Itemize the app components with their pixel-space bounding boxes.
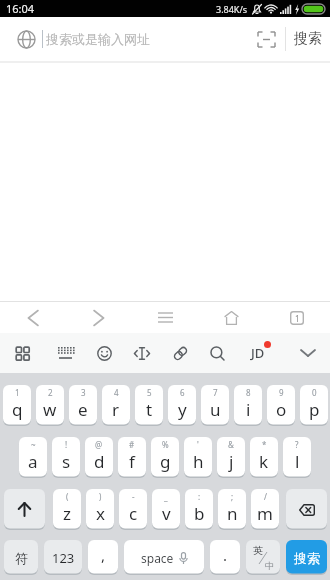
staticText: space [141, 550, 174, 566]
button[interactable]: 搜索或是输入网址 [46, 31, 150, 47]
button[interactable]: space [124, 540, 204, 575]
staticText: 1 [295, 313, 300, 324]
staticText: i [246, 398, 251, 421]
button[interactable]: / [251, 489, 279, 530]
staticText: ; [231, 491, 234, 502]
button[interactable] [290, 333, 326, 373]
staticText: ? [295, 439, 299, 450]
button[interactable]: 1 [264, 302, 330, 333]
button[interactable]: 搜索 [286, 540, 327, 575]
staticText: q [12, 398, 23, 421]
button[interactable]: 符 [4, 540, 38, 575]
button[interactable]: _ [152, 489, 180, 530]
staticText: 3 [81, 387, 86, 398]
button[interactable] [198, 302, 264, 333]
staticText: ' [197, 439, 199, 450]
staticText: , [101, 545, 106, 565]
staticText: l [295, 450, 300, 473]
staticText: k [259, 450, 269, 473]
button[interactable] [286, 489, 327, 530]
button[interactable]: @ [85, 437, 113, 478]
button[interactable]: 0 [300, 385, 328, 426]
staticText: 3.84K/s [216, 3, 248, 15]
button[interactable]: 英 [246, 540, 280, 575]
staticText: 1 [15, 387, 20, 398]
staticText: 16:04 [6, 1, 35, 16]
staticText: g [160, 450, 171, 473]
button[interactable]: ) [86, 489, 114, 530]
staticText: 0 [312, 387, 317, 398]
button[interactable]: 2 [36, 385, 64, 426]
staticText: @ [95, 439, 103, 450]
button[interactable]: 5 [135, 385, 163, 426]
button[interactable] [86, 333, 122, 373]
staticText: ! [65, 439, 68, 450]
button[interactable]: 3 [69, 385, 97, 426]
button[interactable]: ( [53, 489, 81, 530]
button[interactable]: % [151, 437, 179, 478]
button[interactable]: 8 [234, 385, 262, 426]
staticText: 搜索 [294, 30, 322, 48]
staticText: u [210, 398, 221, 421]
button[interactable]: - [119, 489, 147, 530]
button[interactable] [66, 302, 132, 333]
button[interactable] [4, 489, 45, 530]
staticText: 6 [180, 387, 185, 398]
staticText: _ [164, 491, 168, 502]
staticText: & [228, 439, 234, 450]
button[interactable] [199, 333, 235, 373]
staticText: m [257, 502, 273, 525]
staticText: z [63, 502, 71, 525]
button[interactable]: 6 [168, 385, 196, 426]
button[interactable]: 7 [201, 385, 229, 426]
button[interactable]: ? [283, 437, 311, 478]
button[interactable]: 1 [3, 385, 31, 426]
button[interactable]: ~ [19, 437, 47, 478]
button[interactable] [162, 333, 198, 373]
staticText: x [96, 502, 105, 525]
button[interactable]: ' [184, 437, 212, 478]
button[interactable]: 123 [44, 540, 82, 575]
button[interactable]: ; [218, 489, 246, 530]
button[interactable]: JD [240, 333, 276, 373]
button[interactable]: 搜索 [286, 17, 330, 61]
button[interactable]: 4 [102, 385, 130, 426]
button[interactable]: . [210, 540, 240, 575]
staticText: t [146, 398, 153, 421]
staticText: 搜索 [294, 550, 320, 566]
staticText: y [178, 398, 187, 421]
staticText: f [129, 450, 135, 473]
button[interactable]: ! [52, 437, 80, 478]
button[interactable] [124, 333, 160, 373]
button[interactable]: # [118, 437, 146, 478]
staticText: 2 [48, 387, 53, 398]
button[interactable] [4, 333, 40, 373]
staticText: e [78, 398, 88, 421]
staticText: h [193, 450, 204, 473]
staticText: - [132, 491, 135, 502]
staticText: 4 [114, 387, 119, 398]
button[interactable] [132, 302, 198, 333]
staticText: 7 [213, 387, 218, 398]
staticText: JD [251, 344, 265, 362]
button[interactable]: , [88, 540, 118, 575]
staticText: 9 [279, 387, 284, 398]
staticText: ) [99, 491, 102, 502]
staticText: 8 [246, 387, 251, 398]
staticText: o [276, 398, 287, 421]
staticText: : [198, 491, 201, 502]
button[interactable]: : [185, 489, 213, 530]
staticText: s [62, 450, 71, 473]
button[interactable] [48, 333, 84, 373]
button[interactable]: & [217, 437, 245, 478]
button[interactable] [0, 302, 66, 333]
button[interactable] [248, 19, 285, 59]
staticText: p [309, 398, 320, 421]
button[interactable]: * [250, 437, 278, 478]
staticText: * [262, 439, 267, 450]
button[interactable]: 9 [267, 385, 295, 426]
staticText: 英 [253, 544, 263, 557]
staticText: 符 [15, 550, 28, 566]
staticText: a [28, 450, 38, 473]
staticText: n [227, 502, 238, 525]
